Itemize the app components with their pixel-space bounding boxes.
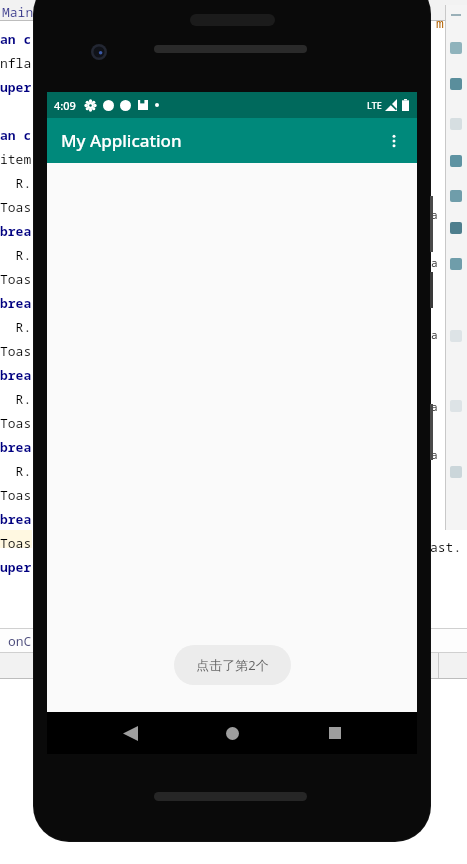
staticText: 4:09: [54, 98, 76, 113]
button[interactable]: Back: [110, 713, 150, 753]
staticText: R. i: [0, 246, 47, 264]
staticText: uper: [0, 558, 32, 576]
staticText: item: [0, 150, 32, 168]
staticText: Toas: [0, 414, 32, 432]
staticText: ast.: [430, 538, 462, 556]
staticText: a: [431, 399, 438, 414]
staticText: R. i: [0, 318, 47, 336]
staticText: Main: [2, 3, 34, 21]
staticText: R. i: [0, 174, 47, 192]
staticText: My Application: [61, 129, 182, 152]
staticText: R. i: [0, 390, 47, 408]
staticText: m: [436, 14, 444, 32]
staticText: brea: [0, 366, 32, 384]
staticText: an c: [0, 30, 32, 48]
staticText: a: [431, 327, 438, 342]
staticText: nfla: [0, 54, 32, 72]
button[interactable]: Recent apps: [315, 713, 355, 753]
staticText: Toas: [0, 198, 32, 216]
staticText: brea: [0, 438, 32, 456]
staticText: a: [431, 447, 438, 462]
staticText: LTE: [367, 99, 382, 111]
staticText: Toas: [0, 270, 32, 288]
staticText: uper: [0, 78, 32, 96]
staticText: brea: [0, 222, 32, 240]
staticText: Toas: [0, 534, 32, 552]
staticText: a: [431, 255, 438, 270]
staticText: Toas: [0, 486, 32, 504]
staticText: Toas: [0, 342, 32, 360]
button[interactable]: Home: [212, 713, 252, 753]
staticText: 点击了第2个: [196, 656, 269, 674]
staticText: R. i: [0, 462, 47, 480]
staticText: an c: [0, 126, 32, 144]
button[interactable]: More options: [377, 124, 411, 158]
staticText: a: [431, 207, 438, 222]
staticText: brea: [0, 510, 32, 528]
staticText: onC: [8, 632, 32, 650]
staticText: brea: [0, 294, 32, 312]
